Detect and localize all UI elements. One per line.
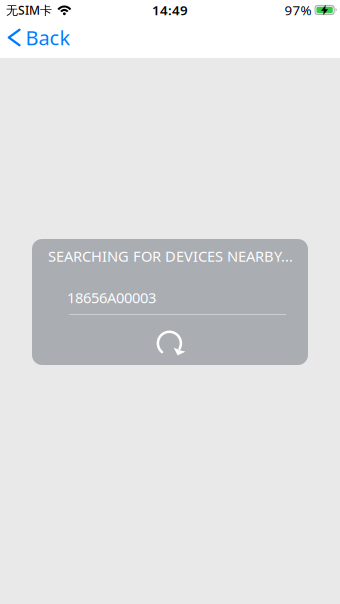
button[interactable]: Refresh <box>154 328 186 356</box>
button[interactable]: Back <box>0 19 82 55</box>
staticText: 18656A00003 <box>67 288 156 307</box>
staticText: 无SIM卡 <box>6 2 52 18</box>
staticText: Back <box>25 24 70 51</box>
staticText: SEARCHING FOR DEVICES NEARBY... <box>48 246 293 266</box>
button[interactable]: 18656A00003 <box>32 273 308 315</box>
staticText: 97% <box>284 1 311 19</box>
staticText: 14:49 <box>152 1 188 19</box>
